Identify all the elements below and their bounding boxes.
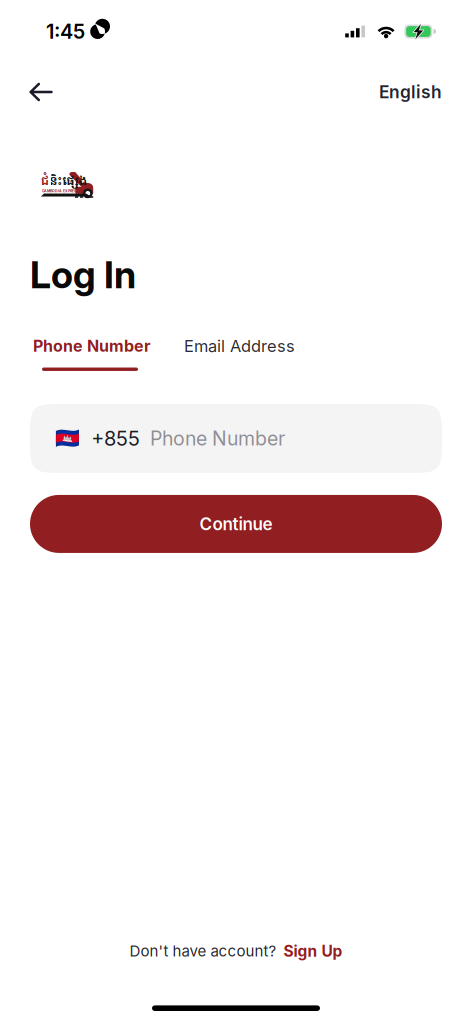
staticText: 🇰🇭: [55, 427, 80, 450]
button[interactable]: Email Address: [175, 336, 304, 356]
staticText: ជំ: [41, 173, 49, 188]
staticText: Continue: [199, 514, 272, 534]
staticText: 1:45: [46, 19, 85, 44]
button[interactable]: 🇰🇭: [30, 404, 442, 473]
staticText: Don't have account?: [129, 942, 276, 960]
staticText: Log In: [30, 252, 136, 297]
staticText: Email Address: [184, 336, 295, 356]
staticText: Phone Number: [150, 427, 285, 450]
button[interactable]: Sign Up: [283, 942, 342, 960]
staticText: English: [379, 81, 442, 102]
button[interactable]: Back: [29, 72, 73, 112]
button[interactable]: English: [379, 72, 442, 112]
button[interactable]: Phone Number: [24, 336, 160, 371]
button[interactable]: Continue: [30, 495, 442, 553]
staticText: CAMBODIA EXPRESS: [42, 189, 78, 193]
staticText: និះផ្សេង: [49, 173, 86, 188]
staticText: Sign Up: [283, 942, 342, 960]
staticText: Phone Number: [33, 336, 151, 356]
staticText: +855: [91, 426, 140, 450]
